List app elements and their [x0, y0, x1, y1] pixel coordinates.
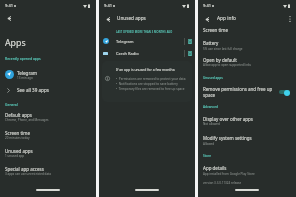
button[interactable]: Back: [4, 13, 14, 23]
button[interactable]: [0, 66, 96, 81]
staticText: LAST OPENED MORE THAN 3 MONTHS AGO: [116, 30, 173, 33]
staticText: App installed from Google Play Store: [203, 172, 255, 176]
staticText: Special app access: [5, 166, 44, 172]
staticText: 9:41: [104, 3, 112, 8]
staticText: Recently opened apps: [5, 56, 41, 61]
button[interactable]: [99, 47, 195, 59]
button[interactable]: [198, 162, 296, 177]
staticText: Modify system settings: [203, 135, 252, 141]
staticText: version 3.3.0.11324 release: [203, 181, 242, 185]
staticText: App details: [203, 165, 227, 171]
staticText: 1 unused app: [5, 154, 25, 158]
button[interactable]: [198, 80, 296, 97]
staticText: Store: [203, 154, 212, 158]
staticText: Battery: [203, 40, 219, 46]
button[interactable]: [0, 84, 96, 96]
staticText: • Permissions are removed to protect you…: [116, 77, 186, 81]
button[interactable]: [198, 24, 296, 34]
staticText: Czech Radio: [116, 51, 139, 56]
button[interactable]: [99, 35, 195, 47]
staticText: Advanced: [203, 105, 218, 109]
staticText: Telegram: [17, 70, 38, 76]
button[interactable]: [198, 54, 296, 69]
button[interactable]: [0, 145, 96, 160]
staticText: • Notifications are stopped to save batt…: [116, 82, 178, 86]
staticText: 9:41: [203, 3, 211, 8]
button[interactable]: Back: [103, 14, 113, 24]
staticText: Screen time: [203, 27, 228, 33]
staticText: Remove permissions and free up space: [203, 86, 277, 98]
staticText: Screen time: [5, 130, 30, 136]
staticText: See all 39 apps: [17, 87, 49, 93]
staticText: Allow app to open supported links: [203, 63, 252, 67]
staticText: Allowed: [203, 142, 215, 146]
button[interactable]: [198, 37, 296, 52]
staticText: App info: [217, 15, 236, 22]
staticText: Telegram: [116, 39, 134, 44]
staticText: 5% use since last full charge: [203, 47, 243, 51]
staticText: • Temporary files are removed to free up…: [116, 87, 185, 91]
staticText: Not allowed: [203, 122, 220, 126]
button[interactable]: More options: [285, 14, 295, 24]
staticText: Unused apps: [203, 76, 223, 80]
staticText: Unused apps: [117, 15, 146, 21]
button[interactable]: [198, 113, 296, 128]
staticText: 9:41: [5, 3, 13, 8]
staticText: 13 min ago: [17, 76, 33, 80]
staticText: Default apps: [5, 112, 32, 118]
staticText: Unused apps: [5, 148, 33, 154]
button[interactable]: [198, 132, 296, 147]
staticText: General: [5, 102, 18, 107]
button[interactable]: Uninstall Telegram: [185, 36, 195, 46]
button[interactable]: [0, 109, 96, 124]
staticText: Display over other apps: [203, 116, 253, 122]
staticText: 20 minutes today: [5, 136, 30, 140]
staticText: 3 apps can use unrestricted data: [5, 172, 51, 176]
staticText: Apps: [5, 37, 26, 49]
button[interactable]: Uninstall Czech Radio: [185, 48, 195, 58]
staticText: Chrome, Phone, and Messages: [5, 118, 49, 122]
staticText: Open by default: [203, 57, 237, 63]
staticText: If an app is unused for a few months:: [116, 67, 176, 72]
button[interactable]: Back: [202, 14, 212, 24]
button[interactable]: [0, 163, 96, 178]
button[interactable]: [0, 127, 96, 142]
